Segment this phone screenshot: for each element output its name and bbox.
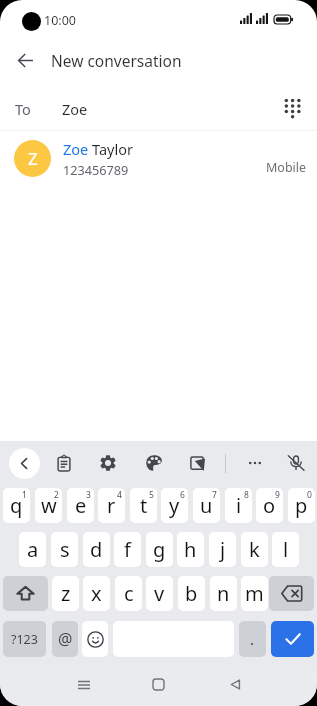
button[interactable]: Mute voice typing <box>280 447 312 479</box>
button[interactable]: . <box>239 621 266 657</box>
staticText: 8 <box>244 489 249 501</box>
button[interactable]: p <box>288 488 315 523</box>
button[interactable]: Settings <box>92 447 124 479</box>
staticText: q <box>10 492 23 519</box>
button[interactable]: Home <box>138 665 178 704</box>
button[interactable]: More options <box>239 447 271 479</box>
staticText: a <box>27 536 39 563</box>
button[interactable]: d <box>83 532 110 567</box>
button[interactable]: h <box>177 532 204 567</box>
button[interactable]: x <box>83 576 110 611</box>
staticText: 9 <box>275 489 280 501</box>
button[interactable]: m <box>241 576 268 611</box>
staticText: i <box>236 492 242 519</box>
button[interactable]: Dialpad <box>275 91 309 125</box>
staticText: m <box>245 580 264 607</box>
button[interactable]: Shift <box>3 576 48 611</box>
button[interactable]: ?123 <box>3 621 46 657</box>
staticText: 123456789 <box>63 161 129 178</box>
staticText: r <box>107 492 116 519</box>
button[interactable]: Theme <box>138 447 170 479</box>
button[interactable]: Z <box>0 131 317 186</box>
staticText: d <box>90 536 103 563</box>
staticText: 10:00 <box>44 12 76 29</box>
staticText: Zoe Taylor <box>63 139 133 159</box>
staticText: . <box>250 629 255 649</box>
button[interactable]: a <box>19 532 46 567</box>
button[interactable]: i <box>225 488 252 523</box>
button[interactable]: Expand toolbar <box>9 448 40 479</box>
button[interactable]: f <box>114 532 141 567</box>
staticText: f <box>124 536 131 563</box>
button[interactable]: q <box>3 488 30 523</box>
button[interactable]: c <box>115 576 142 611</box>
staticText: w <box>41 492 57 519</box>
staticText: x <box>91 580 102 607</box>
staticText: s <box>60 536 70 563</box>
button[interactable]: r <box>98 488 125 523</box>
staticText: j <box>220 536 226 563</box>
staticText: n <box>217 580 230 607</box>
staticText: ?123 <box>11 631 38 648</box>
staticText: l <box>283 536 289 563</box>
staticText: @ <box>58 628 73 650</box>
staticText: Z <box>28 147 38 170</box>
staticText: y <box>169 492 180 519</box>
staticText: 3 <box>86 489 91 501</box>
button[interactable]: b <box>178 576 205 611</box>
staticText: k <box>249 536 260 563</box>
button[interactable]: e <box>67 488 94 523</box>
button[interactable]: g <box>146 532 173 567</box>
staticText: 4 <box>117 489 122 501</box>
staticText: 5 <box>149 489 154 501</box>
staticText: 2 <box>54 489 59 501</box>
staticText: g <box>153 536 166 563</box>
button[interactable]: Emoji <box>82 621 108 657</box>
staticText: u <box>200 492 213 519</box>
button[interactable]: l <box>272 532 299 567</box>
button[interactable]: v <box>146 576 173 611</box>
button[interactable]: o <box>256 488 283 523</box>
staticText: p <box>295 492 308 519</box>
staticText: Mobile <box>266 159 307 176</box>
button[interactable]: j <box>209 532 236 567</box>
staticText: To <box>15 99 31 119</box>
button[interactable]: Recent apps <box>64 665 104 704</box>
staticText: e <box>75 492 87 519</box>
button[interactable]: Back <box>215 665 255 704</box>
button[interactable]: Enter <box>271 621 314 657</box>
button[interactable]: y <box>161 488 188 523</box>
button[interactable]: @ <box>52 621 78 657</box>
staticText: Zoe <box>62 99 88 119</box>
button[interactable]: u <box>193 488 220 523</box>
staticText: New conversation <box>51 50 182 71</box>
staticText: 6 <box>180 489 185 501</box>
staticText: b <box>185 580 198 607</box>
staticText: 7 <box>212 489 217 501</box>
button[interactable]: n <box>210 576 237 611</box>
staticText: o <box>263 492 276 519</box>
button[interactable]: s <box>51 532 78 567</box>
staticText: v <box>154 580 165 607</box>
staticText: 1 <box>22 489 27 501</box>
button[interactable]: Clipboard <box>48 447 80 479</box>
button[interactable]: z <box>52 576 79 611</box>
staticText: c <box>124 580 134 607</box>
staticText: h <box>184 536 197 563</box>
button[interactable]: t <box>130 488 157 523</box>
button[interactable]: Back <box>5 40 45 80</box>
staticText: 0 <box>307 489 312 501</box>
button[interactable]: k <box>241 532 268 567</box>
staticText: z <box>61 580 71 607</box>
button[interactable]: Backspace <box>269 576 314 611</box>
staticText: t <box>140 492 148 519</box>
button[interactable]: Sticker <box>181 447 213 479</box>
button[interactable]: w <box>35 488 62 523</box>
